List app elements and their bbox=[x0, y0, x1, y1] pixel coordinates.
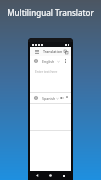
button[interactable]: Swap languages bbox=[63, 48, 68, 55]
button[interactable]: Copy translation bbox=[66, 95, 68, 101]
staticText: Enter text here bbox=[35, 70, 58, 74]
staticText: Spanish bbox=[42, 96, 56, 101]
button[interactable]: Home bbox=[47, 172, 54, 179]
button[interactable]: Enter text here bbox=[30, 66, 71, 92]
staticText: English bbox=[42, 59, 55, 64]
button[interactable]: Speak translation bbox=[59, 95, 65, 101]
button[interactable]: Recent apps bbox=[60, 172, 67, 179]
staticText: Translation bbox=[43, 49, 63, 54]
button[interactable]: More options bbox=[62, 58, 68, 64]
button[interactable]: Open navigation drawer bbox=[33, 48, 40, 55]
staticText: Multilingual Translator bbox=[7, 7, 94, 18]
button[interactable]: English bbox=[30, 56, 71, 66]
button[interactable]: Back bbox=[34, 172, 41, 179]
button[interactable]: Spanish bbox=[30, 93, 71, 103]
